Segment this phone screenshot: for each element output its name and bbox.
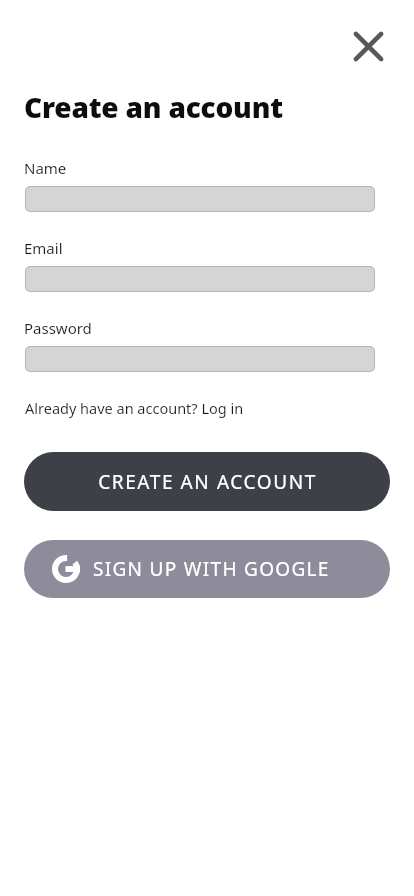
staticText: Create an account	[24, 88, 283, 126]
staticText: Name	[24, 158, 67, 178]
staticText: Already have an account? Log in	[25, 398, 244, 418]
staticText: Password	[24, 318, 92, 338]
button[interactable]: CREATE AN ACCOUNT	[24, 452, 390, 511]
button[interactable]: Password	[25, 346, 375, 372]
staticText: Email	[24, 238, 63, 258]
staticText: SIGN UP WITH GOOGLE	[93, 556, 330, 582]
staticText: CREATE AN ACCOUNT	[98, 469, 317, 495]
button[interactable]: SIGN UP WITH GOOGLE	[24, 540, 390, 598]
button[interactable]: Close	[344, 22, 392, 70]
button[interactable]: Name	[25, 186, 375, 212]
button[interactable]: Email	[25, 266, 375, 292]
button[interactable]: Already have an account? Log in	[24, 396, 245, 420]
